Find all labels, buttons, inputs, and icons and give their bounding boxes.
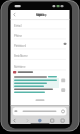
button[interactable] [12, 32, 68, 41]
button[interactable] [24, 117, 32, 124]
button[interactable] [59, 76, 67, 84]
button[interactable] [48, 117, 56, 124]
button[interactable] [12, 107, 67, 116]
button[interactable] [36, 117, 44, 124]
button[interactable] [11, 117, 19, 124]
button[interactable] [11, 11, 19, 19]
staticText: First Name [14, 54, 28, 58]
button[interactable] [33, 96, 47, 103]
button[interactable] [12, 22, 68, 31]
button[interactable] [12, 42, 68, 51]
staticText: Phone [14, 34, 23, 38]
staticText: Surname [14, 65, 26, 69]
button[interactable] [12, 69, 36, 75]
staticText: Password [14, 44, 27, 48]
staticText: Sign up [36, 13, 47, 17]
button[interactable] [59, 117, 67, 124]
button[interactable] [12, 52, 68, 61]
staticText: E-mail [14, 24, 22, 28]
button[interactable] [12, 62, 68, 71]
button[interactable] [59, 86, 67, 94]
